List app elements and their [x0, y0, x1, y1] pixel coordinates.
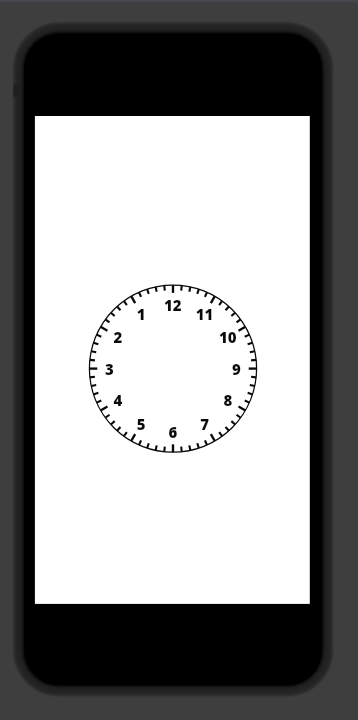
button[interactable]: Mirrored analog clock face	[85, 281, 260, 456]
